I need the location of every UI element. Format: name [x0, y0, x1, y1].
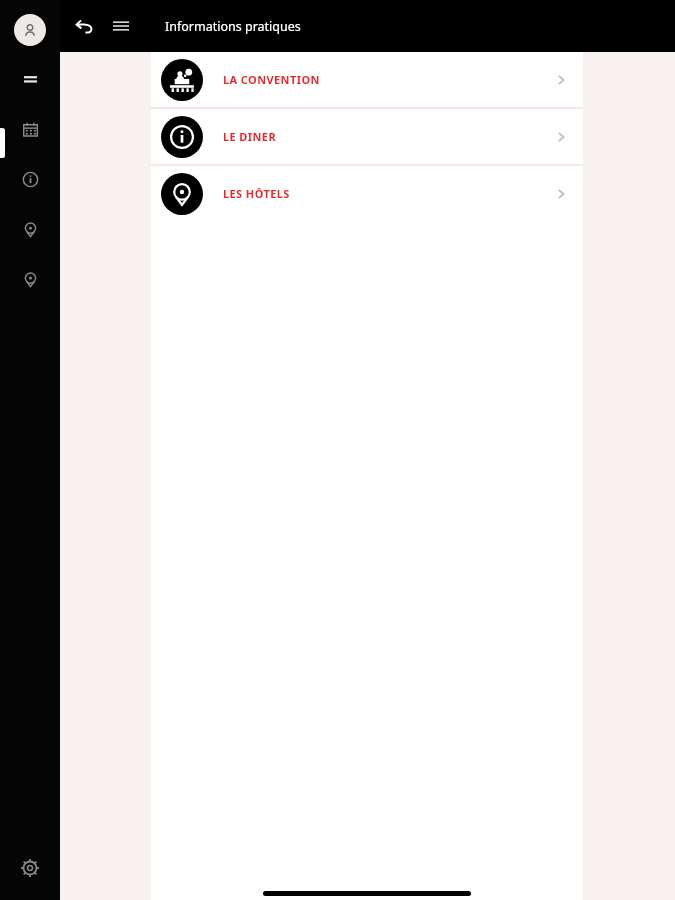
- staticText: LA CONVENTION: [223, 72, 320, 87]
- button[interactable]: Information: [15, 164, 45, 194]
- button[interactable]: Agenda: [15, 114, 45, 144]
- button[interactable]: LA CONVENTION: [151, 52, 583, 107]
- button[interactable]: Map: [15, 214, 45, 244]
- button[interactable]: LE DINER: [151, 109, 583, 164]
- button[interactable]: Menu: [104, 9, 138, 43]
- button[interactable]: Program: [15, 64, 45, 94]
- button[interactable]: LES HÔTELS: [151, 166, 583, 221]
- staticText: LES HÔTELS: [223, 186, 290, 201]
- button[interactable]: Back: [68, 9, 102, 43]
- button[interactable]: Profile: [14, 14, 46, 46]
- button[interactable]: Settings: [18, 856, 42, 880]
- staticText: LE DINER: [223, 129, 277, 144]
- button[interactable]: Places: [15, 264, 45, 294]
- staticText: Informations pratiques: [165, 18, 301, 35]
